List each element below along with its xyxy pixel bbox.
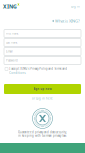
button[interactable]: What is XING? xyxy=(52,13,80,29)
staticText: in keeping with German privacy law. xyxy=(18,134,67,137)
staticText: What is XING? xyxy=(55,18,80,24)
staticText: Conditions. xyxy=(9,71,26,75)
staticText: Sign up now xyxy=(33,87,51,91)
staticText: or Log in here xyxy=(32,97,53,100)
staticText: Guaranteed privacy and data security, xyxy=(18,130,67,134)
staticText: I accept XING's Privacy Policy and Terms… xyxy=(9,67,67,70)
staticText: Password xyxy=(6,59,18,62)
button[interactable]: Sign up now xyxy=(4,84,81,94)
staticText: Last name xyxy=(6,41,18,44)
staticText: Log in xyxy=(71,5,80,8)
button[interactable]: Log in xyxy=(71,5,80,8)
button[interactable]: or Log in here xyxy=(32,94,53,103)
staticText: E-mail xyxy=(6,50,13,53)
staticText: First name xyxy=(6,32,19,35)
staticText: XING xyxy=(3,3,17,10)
